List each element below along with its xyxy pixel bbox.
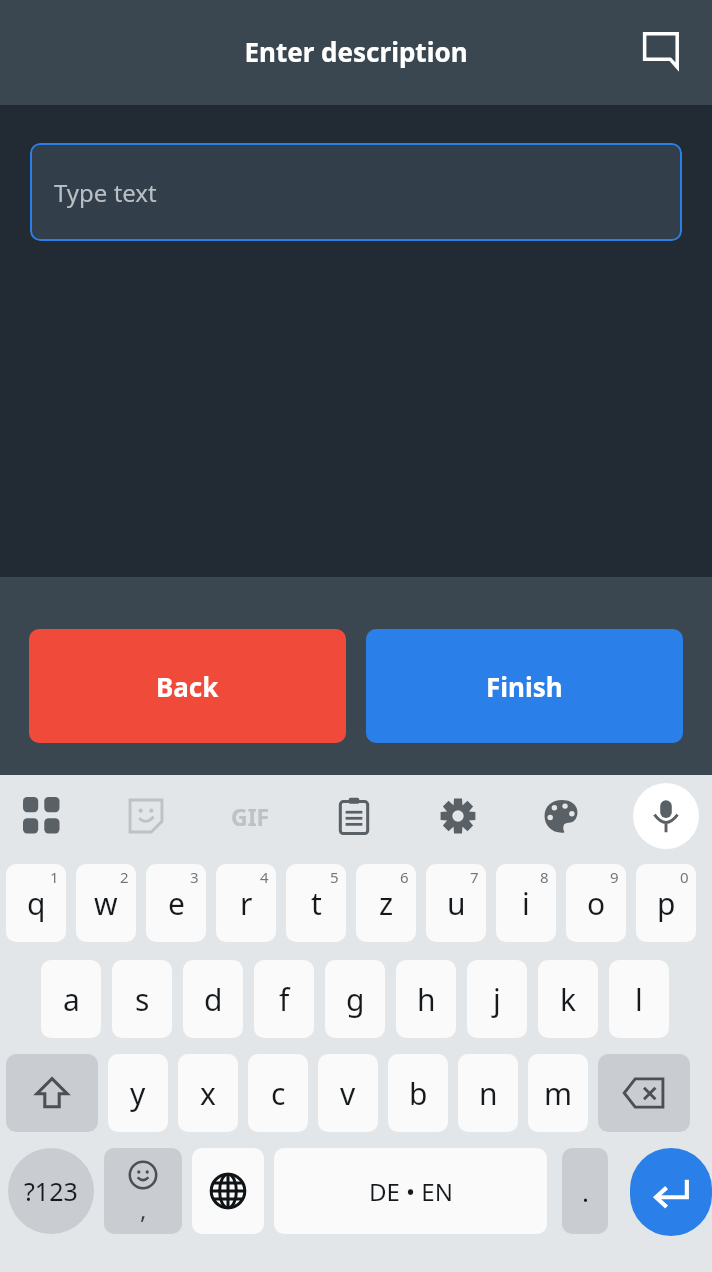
staticText: i: [522, 883, 530, 924]
button[interactable]: d: [183, 960, 243, 1038]
button[interactable]: m: [528, 1054, 588, 1132]
button[interactable]: b: [388, 1054, 448, 1132]
staticText: Back: [156, 669, 219, 704]
button[interactable]: c: [248, 1054, 308, 1132]
button[interactable]: k: [538, 960, 598, 1038]
button[interactable]: r: [216, 864, 276, 942]
staticText: m: [544, 1073, 573, 1114]
staticText: o: [587, 883, 606, 924]
staticText: h: [417, 979, 436, 1020]
button[interactable]: Backspace: [598, 1054, 690, 1132]
button[interactable]: z: [356, 864, 416, 942]
staticText: DE • EN: [369, 1175, 453, 1208]
button[interactable]: l: [609, 960, 669, 1038]
staticText: 2: [120, 867, 129, 887]
button[interactable]: n: [458, 1054, 518, 1132]
button[interactable]: DE • EN: [274, 1148, 547, 1234]
button[interactable]: GIF: [217, 783, 283, 849]
staticText: a: [63, 979, 80, 1020]
staticText: k: [560, 979, 577, 1020]
staticText: d: [204, 979, 223, 1020]
button[interactable]: Stickers: [113, 783, 179, 849]
staticText: 8: [540, 867, 549, 887]
button[interactable]: y: [108, 1054, 168, 1132]
button[interactable]: Type text: [30, 143, 682, 241]
staticText: Finish: [486, 669, 563, 704]
staticText: t: [311, 883, 322, 924]
button[interactable]: Voice input: [633, 783, 699, 849]
staticText: 9: [610, 867, 619, 887]
button[interactable]: u: [426, 864, 486, 942]
staticText: e: [168, 883, 185, 924]
button[interactable]: g: [325, 960, 385, 1038]
button[interactable]: a: [41, 960, 101, 1038]
button[interactable]: Settings: [425, 783, 491, 849]
staticText: l: [635, 979, 643, 1020]
staticText: g: [346, 979, 365, 1020]
staticText: 5: [330, 867, 339, 887]
button[interactable]: Finish: [366, 629, 683, 743]
button[interactable]: h: [396, 960, 456, 1038]
staticText: 4: [260, 867, 269, 887]
button[interactable]: Apps: [9, 783, 75, 849]
staticText: 3: [190, 867, 199, 887]
staticText: f: [279, 979, 290, 1020]
staticText: Type text: [54, 176, 157, 209]
button[interactable]: x: [178, 1054, 238, 1132]
button[interactable]: ?123: [8, 1148, 94, 1234]
staticText: j: [493, 979, 501, 1020]
button[interactable]: Shift: [6, 1054, 98, 1132]
staticText: Enter description: [244, 34, 468, 69]
button[interactable]: Comments: [636, 25, 692, 81]
staticText: z: [379, 883, 394, 924]
staticText: n: [479, 1073, 498, 1114]
button[interactable]: Enter: [630, 1148, 712, 1236]
button[interactable]: j: [467, 960, 527, 1038]
button[interactable]: Change language: [192, 1148, 264, 1234]
staticText: 6: [400, 867, 409, 887]
staticText: v: [340, 1073, 356, 1114]
staticText: s: [135, 979, 150, 1020]
button[interactable]: f: [254, 960, 314, 1038]
button[interactable]: v: [318, 1054, 378, 1132]
button[interactable]: Back: [29, 629, 346, 743]
button[interactable]: .: [562, 1148, 608, 1234]
button[interactable]: Clipboard: [321, 783, 387, 849]
staticText: 0: [680, 867, 689, 887]
staticText: w: [94, 883, 118, 924]
button[interactable]: q: [6, 864, 66, 942]
button[interactable]: s: [112, 960, 172, 1038]
staticText: r: [240, 883, 253, 924]
staticText: ,: [140, 1193, 147, 1226]
button[interactable]: w: [76, 864, 136, 942]
button[interactable]: t: [286, 864, 346, 942]
staticText: y: [130, 1073, 146, 1114]
button[interactable]: Themes: [529, 783, 595, 849]
staticText: u: [447, 883, 466, 924]
staticText: GIF: [231, 801, 270, 832]
staticText: 7: [470, 867, 479, 887]
staticText: p: [657, 883, 676, 924]
button[interactable]: e: [146, 864, 206, 942]
staticText: c: [271, 1073, 286, 1114]
staticText: b: [409, 1073, 428, 1114]
staticText: q: [27, 883, 46, 924]
staticText: 1: [50, 867, 59, 887]
button[interactable]: o: [566, 864, 626, 942]
button[interactable]: p: [636, 864, 696, 942]
button[interactable]: Emoji: [104, 1148, 182, 1234]
staticText: x: [200, 1073, 216, 1114]
staticText: .: [582, 1174, 589, 1209]
staticText: ?123: [24, 1174, 78, 1208]
button[interactable]: i: [496, 864, 556, 942]
